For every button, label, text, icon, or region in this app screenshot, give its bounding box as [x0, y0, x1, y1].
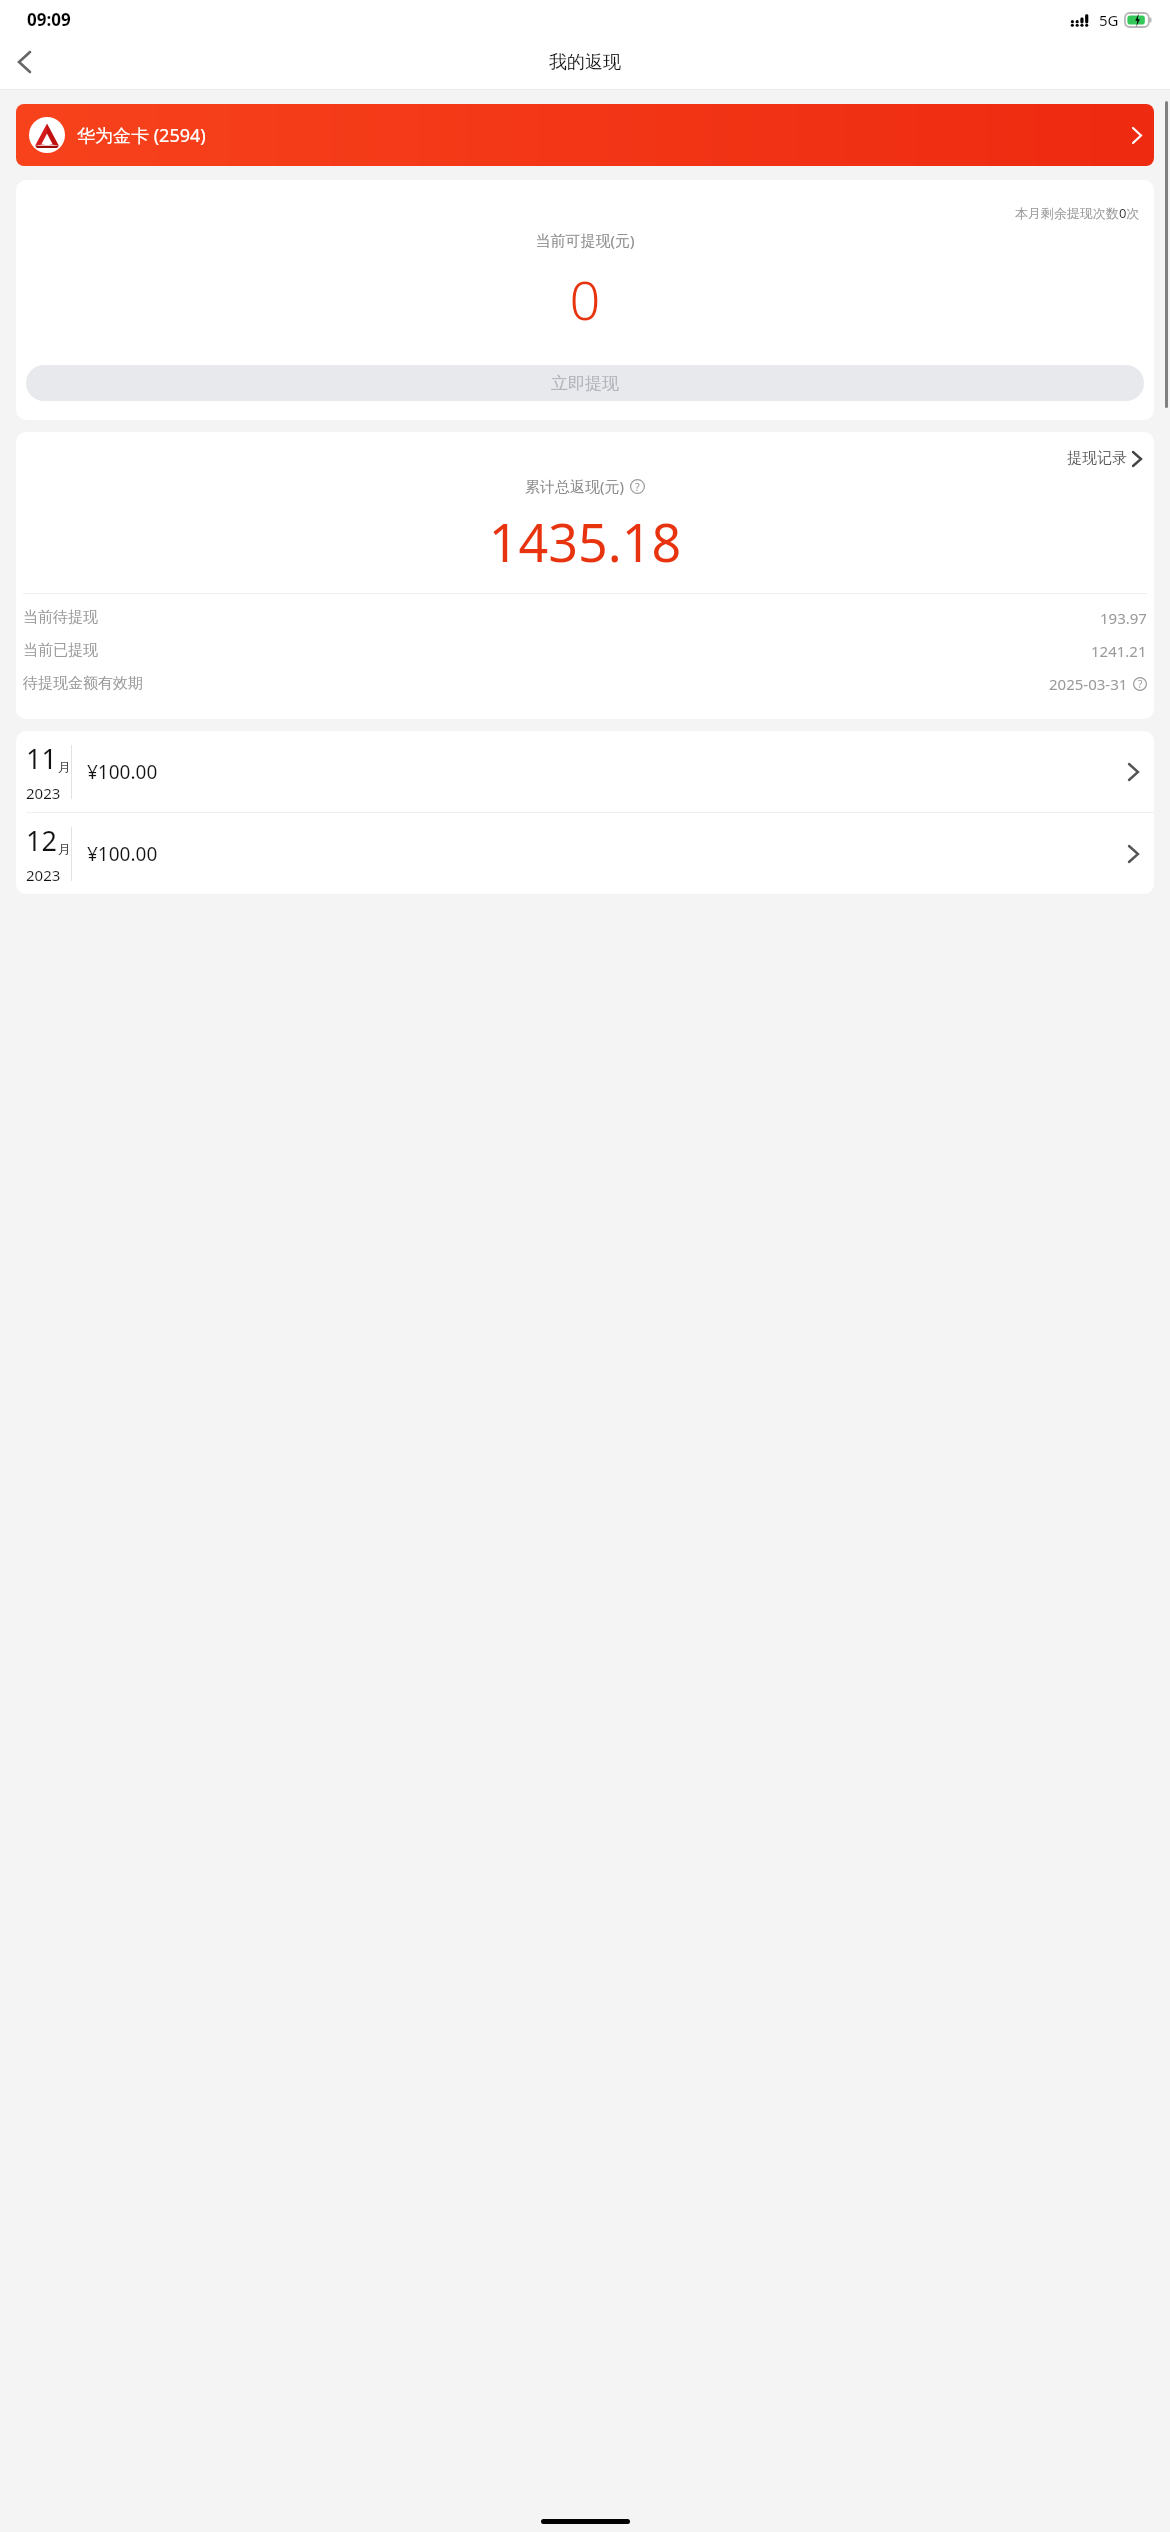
staticText: ? — [635, 479, 640, 494]
staticText: 当前已提现 — [23, 641, 98, 660]
staticText: 待提现金额有效期 — [23, 674, 143, 693]
staticText: 本月剩余提现次数0次 — [1015, 204, 1140, 222]
button[interactable]: 提现记录 — [1067, 449, 1141, 468]
button[interactable]: 12 — [16, 813, 1154, 894]
button[interactable]: 11 — [16, 731, 1154, 812]
staticText: 提现记录 — [1067, 449, 1127, 468]
button[interactable]: 待提现金额有效期 — [23, 672, 1147, 695]
staticText: 11 — [26, 740, 57, 777]
staticText: 193.97 — [1100, 608, 1147, 628]
staticText: 月 — [58, 759, 71, 775]
button[interactable]: Back — [0, 38, 48, 86]
staticText: ? — [1138, 677, 1143, 691]
staticText: 2023 — [26, 865, 61, 885]
staticText: 0 — [16, 262, 1154, 336]
staticText: 当前待提现 — [23, 608, 98, 627]
staticText: ¥100.00 — [87, 759, 158, 785]
staticText: 12 — [26, 822, 57, 859]
button[interactable]: 立即提现 — [26, 365, 1144, 401]
staticText: 1241.21 — [1091, 641, 1147, 661]
staticText: 我的返现 — [549, 51, 621, 74]
staticText: 09:09 — [27, 8, 71, 31]
button[interactable]: 华为金卡 (2594) — [16, 104, 1154, 166]
staticText: 2023 — [26, 783, 61, 803]
staticText: 当前可提现(元) — [16, 230, 1154, 250]
staticText: 月 — [58, 841, 71, 857]
staticText: 1435.18 — [16, 506, 1154, 577]
staticText: 5G — [1099, 10, 1119, 30]
button[interactable]: 当前已提现 — [23, 639, 1147, 662]
button[interactable]: 当前待提现 — [23, 606, 1147, 629]
staticText: ¥100.00 — [87, 841, 158, 867]
staticText: 华为金卡 (2594) — [77, 123, 206, 148]
staticText: 累计总返现(元) — [525, 476, 625, 496]
staticText: 2025-03-31 — [1049, 674, 1128, 694]
staticText: 立即提现 — [551, 373, 619, 394]
